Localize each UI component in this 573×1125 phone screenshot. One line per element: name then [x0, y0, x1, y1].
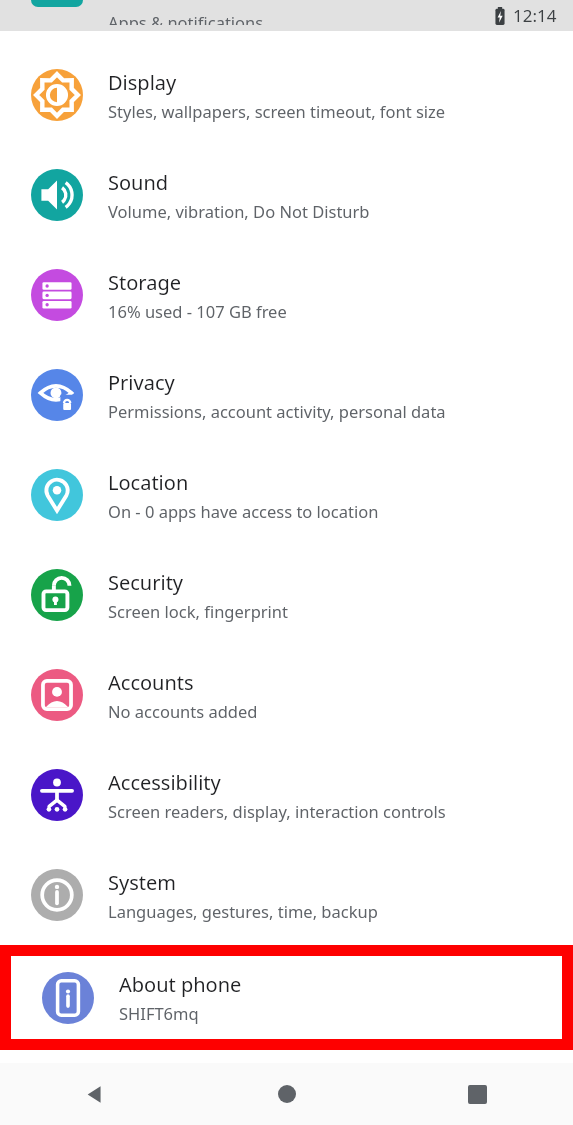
- staticText: About phone: [119, 971, 242, 998]
- staticText: Languages, gestures, time, backup: [108, 900, 378, 922]
- staticText: No accounts added: [108, 700, 258, 722]
- staticText: Volume, vibration, Do Not Disturb: [108, 200, 370, 222]
- staticText: Permissions, account activity, personal …: [108, 400, 446, 422]
- staticText: Screen readers, display, interaction con…: [108, 800, 446, 822]
- button[interactable]: Sound: [0, 145, 573, 245]
- staticText: Privacy: [108, 369, 175, 396]
- button[interactable]: About phone: [11, 956, 562, 1039]
- button[interactable]: Location: [0, 445, 573, 545]
- staticText: Location: [108, 469, 189, 496]
- button[interactable]: Storage: [0, 245, 573, 345]
- button[interactable]: Back: [0, 1063, 191, 1125]
- button[interactable]: Security: [0, 545, 573, 645]
- staticText: SHIFT6mq: [119, 1002, 199, 1024]
- button[interactable]: Display: [0, 45, 573, 145]
- staticText: Display: [108, 69, 177, 96]
- button[interactable]: Privacy: [0, 345, 573, 445]
- button[interactable]: Accounts: [0, 645, 573, 745]
- staticText: Apps & notifications: [108, 11, 264, 25]
- button[interactable]: System: [0, 845, 573, 945]
- staticText: On - 0 apps have access to location: [108, 500, 379, 522]
- staticText: System: [108, 869, 176, 896]
- staticText: Styles, wallpapers, screen timeout, font…: [108, 100, 446, 122]
- button[interactable]: Home: [191, 1063, 382, 1125]
- staticText: 16% used - 107 GB free: [108, 300, 287, 322]
- button[interactable]: Recent apps: [382, 1063, 573, 1125]
- staticText: Sound: [108, 169, 169, 196]
- staticText: Screen lock, fingerprint: [108, 600, 289, 622]
- staticText: Storage: [108, 269, 181, 296]
- staticText: Accounts: [108, 669, 194, 696]
- staticText: Accessibility: [108, 769, 221, 796]
- staticText: Security: [108, 569, 184, 596]
- button[interactable]: Accessibility: [0, 745, 573, 845]
- staticText: 12:14: [513, 4, 557, 27]
